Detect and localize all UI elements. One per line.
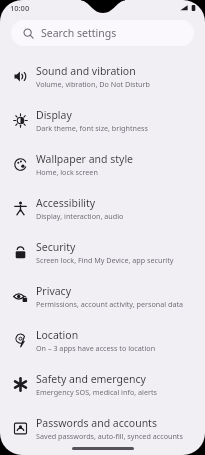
staticText: Permissions, account activity, personal … [36,299,184,309]
staticText: Home, lock screen [36,167,98,177]
staticText: Sound and vibration [36,64,136,78]
staticText: Dark theme, font size, brightness [36,123,148,133]
button[interactable]: Safety and emergency [0,362,205,406]
staticText: On – 3 apps have access to location [36,343,156,353]
button[interactable]: Privacy [0,274,205,318]
staticText: Wallpaper and style [36,152,134,166]
staticText: Location [36,328,79,342]
staticText: Display [36,108,72,122]
staticText: Safety and emergency [36,372,146,386]
staticText: 10:00 [10,3,30,13]
button[interactable]: Location [0,318,205,362]
staticText: Accessibility [36,196,96,210]
staticText: Display, interaction, audio [36,211,124,221]
button[interactable]: Passwords and accounts [0,406,205,450]
staticText: Screen lock, Find My Device, app securit… [36,255,174,265]
staticText: Volume, vibration, Do Not Disturb [36,79,150,89]
button[interactable]: Security [0,230,205,274]
staticText: Passwords and accounts [36,416,157,430]
staticText: Security [36,240,76,254]
button[interactable]: Display [0,98,205,142]
staticText: Privacy [36,284,72,298]
button[interactable]: Wallpaper and style [0,142,205,186]
staticText: Saved passwords, auto-fill, synced accou… [36,431,183,441]
staticText: Search settings [41,26,117,40]
button[interactable]: Accessibility [0,186,205,230]
button[interactable]: Sound and vibration [0,54,205,98]
staticText: Emergency SOS, medical info, alerts [36,387,157,397]
button[interactable]: Search settings [11,20,194,46]
